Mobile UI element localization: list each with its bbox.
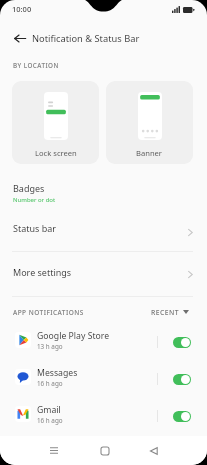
button[interactable]: Back xyxy=(134,437,174,464)
staticText: Status bar xyxy=(13,222,57,234)
button[interactable]: Toggle notifications for Google Play Sto… xyxy=(173,337,191,348)
staticText: APP NOTIFICATIONS xyxy=(13,308,84,317)
staticText: Google Play Store xyxy=(37,330,110,342)
button[interactable]: More settings xyxy=(0,252,207,296)
button[interactable]: Toggle notifications for Gmail xyxy=(173,411,191,422)
staticText: Banner xyxy=(136,148,163,158)
button[interactable]: Back xyxy=(6,23,33,53)
button[interactable]: Home xyxy=(85,437,125,464)
button[interactable]: Toggle notifications for Messages xyxy=(173,374,191,385)
button[interactable]: Status bar xyxy=(0,214,207,251)
staticText: Gmail xyxy=(37,404,61,416)
staticText: 13 h ago xyxy=(37,342,63,351)
staticText: BY LOCATION xyxy=(13,61,59,70)
staticText: 16 h ago xyxy=(37,416,63,425)
staticText: Badges xyxy=(13,182,45,194)
button[interactable]: Lock screen xyxy=(12,81,99,164)
button[interactable]: RECENT xyxy=(151,304,193,320)
staticText: More settings xyxy=(13,266,72,278)
staticText: 16 h ago xyxy=(37,379,63,388)
button[interactable]: Messages xyxy=(0,361,207,394)
button[interactable]: Google Play Store xyxy=(0,324,207,357)
button[interactable]: Recents xyxy=(34,437,74,464)
button[interactable]: Banner xyxy=(106,81,193,164)
staticText: Lock screen xyxy=(35,148,77,158)
button[interactable]: Gmail xyxy=(0,398,207,431)
staticText: Number or dot xyxy=(13,196,56,204)
staticText: 10:00 xyxy=(12,4,32,14)
button[interactable]: Badges xyxy=(0,172,207,214)
staticText: Notification & Status Bar xyxy=(32,32,140,45)
staticText: Messages xyxy=(37,367,78,379)
staticText: RECENT xyxy=(151,308,179,317)
